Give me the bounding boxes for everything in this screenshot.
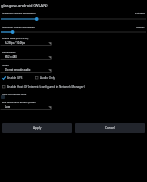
- staticText: Enable Host Of Interest (configured in N…: [7, 85, 85, 89]
- button[interactable]: Apply: [2, 123, 72, 133]
- staticText: 5.0Mbps: [135, 11, 145, 14]
- button[interactable]: Cancel: [75, 123, 145, 133]
- button[interactable]: Enable Host Of Interest (configured in N…: [2, 85, 85, 89]
- staticText: End Resolution Buffer Quality: [2, 100, 36, 103]
- button[interactable]: End Resolution Buffer Quality: [0, 100, 147, 112]
- button[interactable]: Host of interest stop value: [1, 95, 5, 99]
- button[interactable]: Audio Only: [35, 76, 55, 80]
- staticText: Frame Rate (PAL/NTSC): [2, 36, 29, 39]
- button[interactable]: Bandwidth slider: [0, 16, 147, 22]
- staticText: 48Kbps: [136, 25, 145, 28]
- staticText: Minimum Stream Bandwidth: [2, 25, 35, 28]
- staticText: Dimensions: [2, 50, 16, 53]
- staticText: Audio: [2, 63, 9, 66]
- staticText: Host Of Interest Stop: [2, 92, 27, 95]
- button[interactable]: Enable GPS: [2, 76, 23, 80]
- staticText: Audio Only: [40, 76, 55, 80]
- button[interactable]: Bandwidth slider: [0, 29, 147, 35]
- staticText: 852 x 480: [5, 55, 17, 59]
- staticText: Apply: [33, 126, 42, 130]
- staticText: Enable GPS: [7, 76, 23, 80]
- button[interactable]: Frame Rate (PAL/NTSC): [0, 36, 147, 48]
- staticText: Low: [5, 105, 10, 109]
- staticText: Maximum Stream Bandwidth: [2, 11, 36, 14]
- staticText: Cancel: [105, 126, 115, 130]
- staticText: glasgow-android (WLAN): [1, 3, 48, 8]
- button[interactable]: Dimensions: [0, 50, 147, 62]
- button[interactable]: Audio: [0, 63, 147, 75]
- staticText: 6.25fps / 10.0fps: [5, 41, 26, 45]
- staticText: Do not encode audio: [5, 68, 31, 72]
